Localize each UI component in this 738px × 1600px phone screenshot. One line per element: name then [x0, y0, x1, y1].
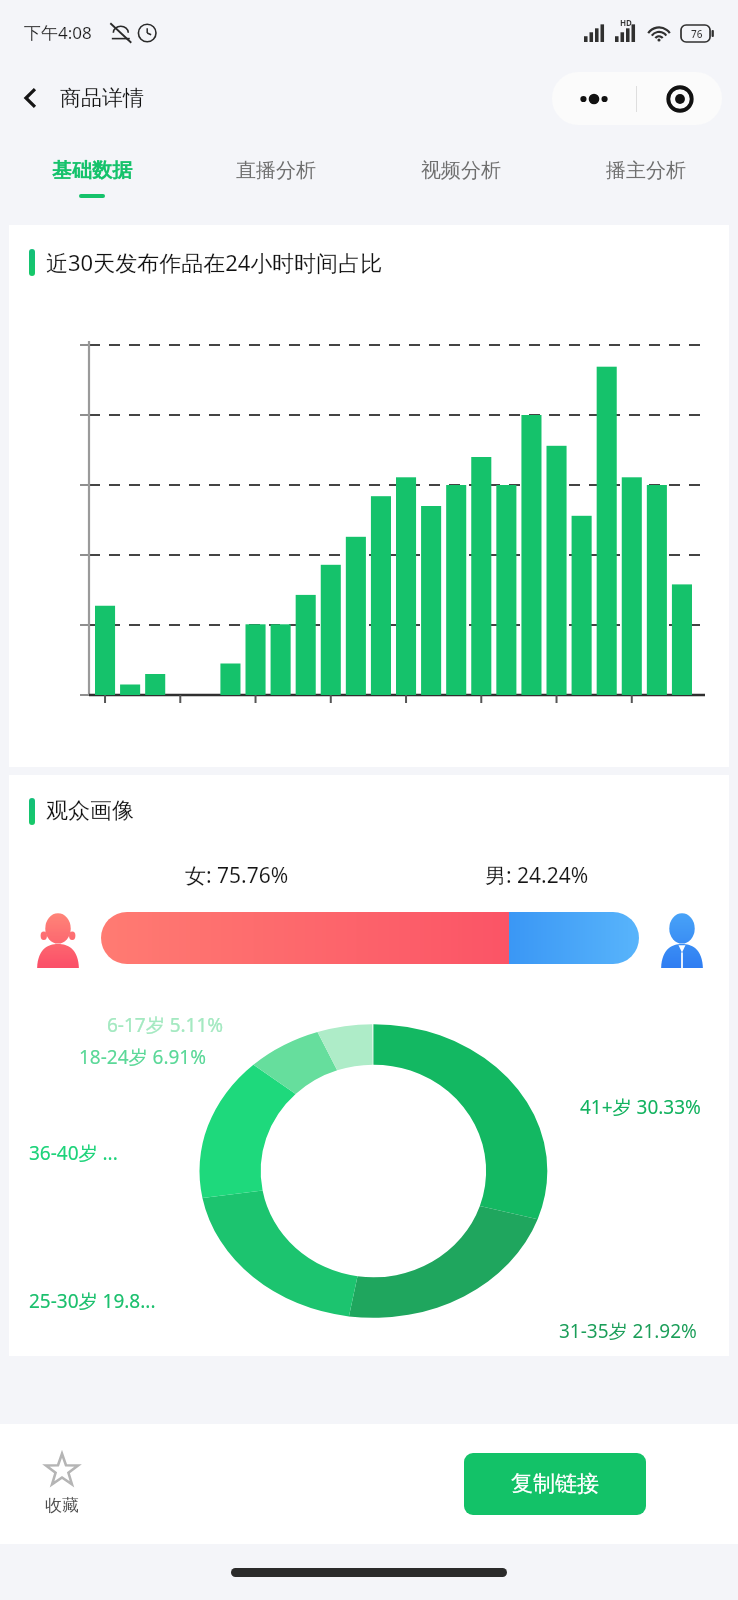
staticText: 近30天发布作品在24小时时间占比	[46, 247, 383, 277]
staticText: 商品详情	[60, 85, 144, 111]
button[interactable]: 播主分析	[553, 131, 738, 225]
staticText: 18-24岁 6.91%	[79, 1044, 207, 1070]
staticText: 男: 24.24%	[485, 861, 589, 890]
staticText: 41+岁 30.33%	[580, 1094, 701, 1120]
staticText: 基础数据	[52, 158, 132, 183]
staticText: 31-35岁 21.92%	[559, 1318, 697, 1344]
staticText: 6-17岁 5.11%	[107, 1012, 224, 1038]
staticText: 25-30岁 19.8...	[29, 1288, 156, 1314]
staticText: 下午4:08	[24, 21, 92, 44]
staticText: 视频分析	[421, 158, 501, 183]
button[interactable]: 收藏	[44, 1452, 80, 1516]
button[interactable]: 基础数据	[0, 131, 184, 225]
staticText: 76	[691, 27, 703, 41]
staticText: 观众画像	[46, 797, 134, 825]
staticText: 收藏	[45, 1495, 79, 1516]
staticText: HD	[620, 17, 632, 28]
button[interactable]: 直播分析	[184, 131, 368, 225]
button[interactable]: Close	[637, 72, 722, 125]
button[interactable]: More	[552, 72, 636, 125]
staticText: 女: 75.76%	[185, 861, 289, 890]
button[interactable]: 复制链接	[464, 1453, 646, 1515]
staticText: 复制链接	[511, 1470, 599, 1498]
staticText: 36-40岁 ...	[29, 1140, 118, 1166]
button[interactable]: Back	[8, 75, 54, 121]
staticText: 直播分析	[236, 158, 316, 183]
staticText: 播主分析	[606, 158, 686, 183]
button[interactable]: 视频分析	[368, 131, 553, 225]
